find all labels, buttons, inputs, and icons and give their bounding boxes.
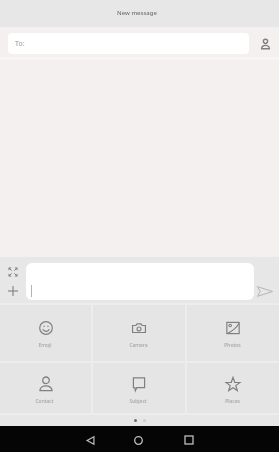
button[interactable]: Choose contact [252,31,278,57]
button[interactable]: Expand [4,263,22,281]
button[interactable]: Photos [187,305,279,361]
staticText: New message [117,9,157,17]
button[interactable] [26,263,254,300]
staticText: Places [225,398,240,405]
button[interactable]: Places [187,363,279,413]
button[interactable]: Emoji [0,305,91,361]
button[interactable]: Add attachment [4,282,22,300]
button[interactable]: Back [78,428,102,452]
button[interactable]: Camera [93,305,185,361]
staticText: Emoji [38,342,52,349]
button[interactable]: Home [126,428,150,452]
button[interactable]: To: [8,33,249,54]
staticText: Subject [129,398,147,405]
button[interactable]: Send [254,281,275,302]
staticText: Contact [35,398,54,405]
staticText: Photos [224,342,241,349]
staticText: To: [15,39,25,49]
staticText: Camera [129,342,148,349]
button[interactable]: Recents [177,428,201,452]
button[interactable]: Subject [93,363,185,413]
button[interactable]: Contact [0,363,91,413]
